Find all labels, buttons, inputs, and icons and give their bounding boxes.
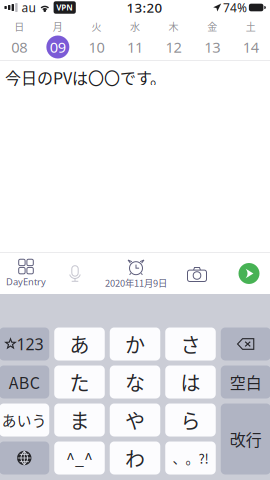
staticText: 改行 [230, 427, 262, 451]
button[interactable]: Send [237, 261, 270, 285]
staticText: あ [69, 329, 89, 358]
staticText: な [125, 367, 145, 396]
staticText: 土 [246, 19, 256, 34]
staticText: DayEntry [6, 275, 46, 288]
button[interactable]: 13 [193, 35, 231, 58]
staticText: 12 [166, 37, 182, 57]
button[interactable]: Voice input [52, 256, 98, 290]
button[interactable]: さ [165, 327, 216, 360]
button[interactable]: ら [165, 403, 216, 436]
button[interactable]: あ [54, 327, 105, 360]
button[interactable]: Switch keyboard [0, 441, 49, 474]
button[interactable]: た [54, 365, 105, 398]
staticText: や [125, 405, 145, 434]
button[interactable]: 08 [0, 35, 39, 58]
staticText: か [125, 329, 145, 358]
button[interactable]: あいう [0, 403, 49, 436]
button[interactable]: 改行 [221, 403, 270, 474]
staticText: は [180, 367, 200, 396]
button[interactable]: ABC [0, 365, 49, 398]
button[interactable]: は [165, 365, 216, 398]
staticText: au [21, 0, 35, 15]
button[interactable]: Camera [174, 256, 220, 290]
button[interactable]: わ [110, 441, 160, 474]
staticText: 11 [127, 37, 143, 57]
staticText: 水 [130, 19, 140, 34]
staticText: 74% [223, 0, 247, 15]
button[interactable]: 09 [39, 35, 77, 58]
staticText: さ [180, 329, 200, 358]
button[interactable]: DayEntry [0, 256, 52, 290]
staticText: VPN [56, 2, 73, 13]
button[interactable]: や [110, 403, 160, 436]
staticText: ら [180, 405, 200, 434]
button[interactable]: 2020年11月9日 [98, 256, 174, 290]
staticText: ま [69, 405, 89, 434]
button[interactable]: ^_^ [54, 441, 105, 474]
staticText: 09 [50, 37, 66, 57]
staticText: た [69, 367, 89, 396]
staticText: 08 [11, 37, 27, 57]
staticText: ABC [9, 370, 40, 394]
staticText: 123 [16, 333, 43, 355]
button[interactable]: 14 [231, 35, 270, 58]
staticText: ^_^ [66, 446, 93, 470]
button[interactable]: Delete [221, 327, 270, 360]
staticText: 2020年11月9日 [105, 276, 167, 289]
staticText: 13 [204, 37, 220, 57]
staticText: わ [125, 443, 145, 472]
staticText: 金 [207, 19, 217, 34]
button[interactable]: 10 [77, 35, 116, 58]
staticText: 月 [53, 19, 63, 34]
staticText: 空白 [230, 370, 262, 394]
button[interactable]: 123 [0, 327, 49, 360]
button[interactable]: 11 [116, 35, 154, 58]
button[interactable]: ま [54, 403, 105, 436]
staticText: 14 [243, 37, 259, 57]
staticText: 今日のPVは〇〇です。 [5, 66, 166, 89]
staticText: あいう [2, 409, 47, 431]
staticText: 日 [14, 19, 24, 34]
staticText: 13:20 [126, 0, 162, 16]
staticText: 火 [91, 19, 101, 34]
button[interactable]: 12 [154, 35, 193, 58]
button[interactable]: な [110, 365, 160, 398]
staticText: 10 [88, 37, 104, 57]
staticText: 木 [169, 19, 179, 34]
button[interactable]: か [110, 327, 160, 360]
button[interactable]: 空白 [221, 365, 270, 398]
button[interactable]: 、。?! [165, 441, 216, 474]
staticText: 、。?! [172, 448, 208, 468]
